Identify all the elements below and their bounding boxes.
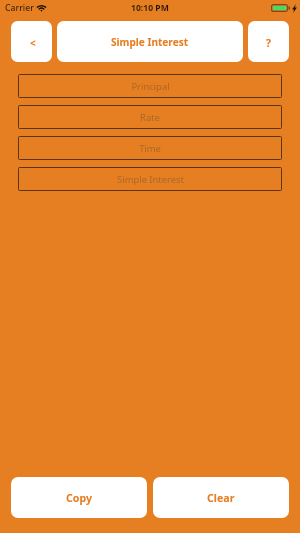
button[interactable]: Help [248, 21, 289, 62]
staticText: < [30, 36, 36, 50]
staticText: 10:10 PM [131, 2, 169, 14]
button[interactable]: Time [18, 136, 282, 160]
staticText: ? [266, 36, 272, 50]
button[interactable]: Simple Interest [57, 21, 243, 62]
staticText: Rate [140, 111, 160, 124]
button[interactable]: Simple Interest [18, 167, 282, 191]
button[interactable]: Back [11, 21, 52, 62]
staticText: Carrier [5, 2, 34, 14]
button[interactable]: Principal [18, 74, 282, 98]
staticText: Copy [66, 491, 92, 505]
button[interactable]: Clear [153, 477, 289, 518]
staticText: Time [139, 142, 161, 155]
button[interactable]: Copy [11, 477, 147, 518]
staticText: Simple Interest [117, 173, 184, 186]
staticText: Simple Interest [111, 35, 189, 49]
staticText: Principal [131, 80, 170, 93]
staticText: Clear [207, 491, 235, 505]
button[interactable]: Rate [18, 105, 282, 129]
